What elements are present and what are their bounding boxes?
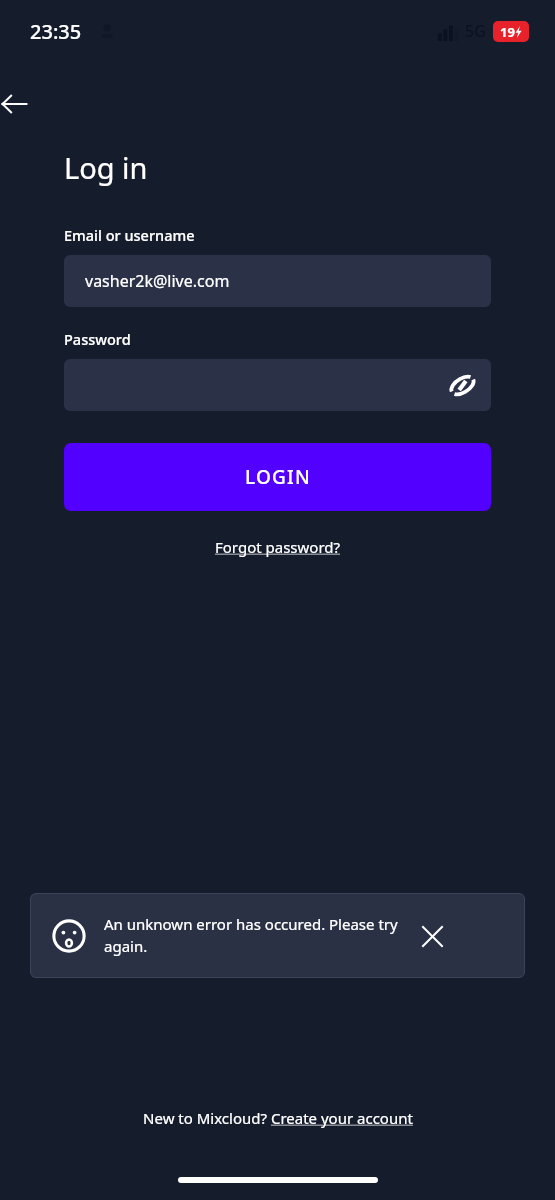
staticText: LOGIN <box>245 464 311 490</box>
staticText: Email or username <box>64 225 195 245</box>
staticText: vasher2k@live.com <box>85 270 230 292</box>
button[interactable]: LOGIN <box>64 443 491 511</box>
staticText: An unknown error has occured. Please try… <box>104 914 404 957</box>
staticText: 19 <box>500 23 515 41</box>
button[interactable]: Show password <box>64 359 491 411</box>
staticText: New to Mixcloud? Create your account <box>143 1108 413 1128</box>
button[interactable]: Back <box>0 80 38 128</box>
button[interactable]: Dismiss error <box>410 914 454 958</box>
button[interactable]: Show password <box>441 364 483 406</box>
staticText: Forgot password? <box>215 537 341 557</box>
button[interactable]: New to Mixcloud? Create your account <box>133 1104 423 1132</box>
staticText: Password <box>64 329 131 349</box>
button[interactable]: vasher2k@live.com <box>64 255 491 307</box>
staticText: 5G <box>465 20 486 42</box>
button[interactable]: Forgot password? <box>203 531 353 563</box>
staticText: Log in <box>64 148 148 187</box>
staticText: 23:35 <box>30 18 82 45</box>
